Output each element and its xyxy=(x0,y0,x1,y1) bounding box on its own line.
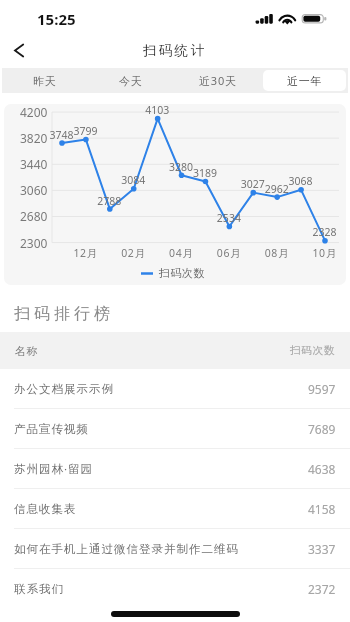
staticText: 扫码统计 xyxy=(143,42,207,59)
staticText: 扫码次数 xyxy=(159,266,205,280)
staticText: 产品宣传视频 xyxy=(14,422,89,437)
staticText: 7689 xyxy=(308,421,336,437)
button[interactable]: 办公文档展示示例 xyxy=(0,369,350,409)
staticText: 联系我们 xyxy=(14,582,64,597)
staticText: 名称 xyxy=(14,344,38,358)
button[interactable]: 产品宣传视频 xyxy=(0,409,350,449)
staticText: 信息收集表 xyxy=(14,502,77,517)
staticText: 扫码次数 xyxy=(290,344,336,357)
staticText: 办公文档展示示例 xyxy=(14,382,114,397)
button[interactable]: 今天 xyxy=(88,68,174,93)
button[interactable]: 如何在手机上通过微信登录并制作二维码 xyxy=(0,529,350,569)
staticText: 15:25 xyxy=(37,9,76,29)
staticText: 如何在手机上通过微信登录并制作二维码 xyxy=(14,542,239,557)
staticText: 近30天 xyxy=(199,73,237,88)
staticText: 今天 xyxy=(119,74,143,88)
staticText: 昨天 xyxy=(33,74,57,88)
button[interactable]: 近一年 xyxy=(263,70,346,91)
button[interactable]: Back xyxy=(5,37,32,64)
staticText: 3337 xyxy=(308,541,336,557)
button[interactable]: 苏州园林·留园 xyxy=(0,449,350,489)
staticText: 4158 xyxy=(308,501,336,517)
staticText: 扫码排行榜 xyxy=(12,304,112,324)
button[interactable]: 联系我们 xyxy=(0,569,350,609)
staticText: 9597 xyxy=(308,381,336,397)
staticText: 苏州园林·留园 xyxy=(14,461,93,477)
staticText: 2372 xyxy=(308,581,336,597)
staticText: 4638 xyxy=(308,461,336,477)
button[interactable]: 昨天 xyxy=(2,68,88,93)
button[interactable]: 近30天 xyxy=(174,68,261,93)
staticText: 近一年 xyxy=(287,74,323,88)
button[interactable]: 信息收集表 xyxy=(0,489,350,529)
